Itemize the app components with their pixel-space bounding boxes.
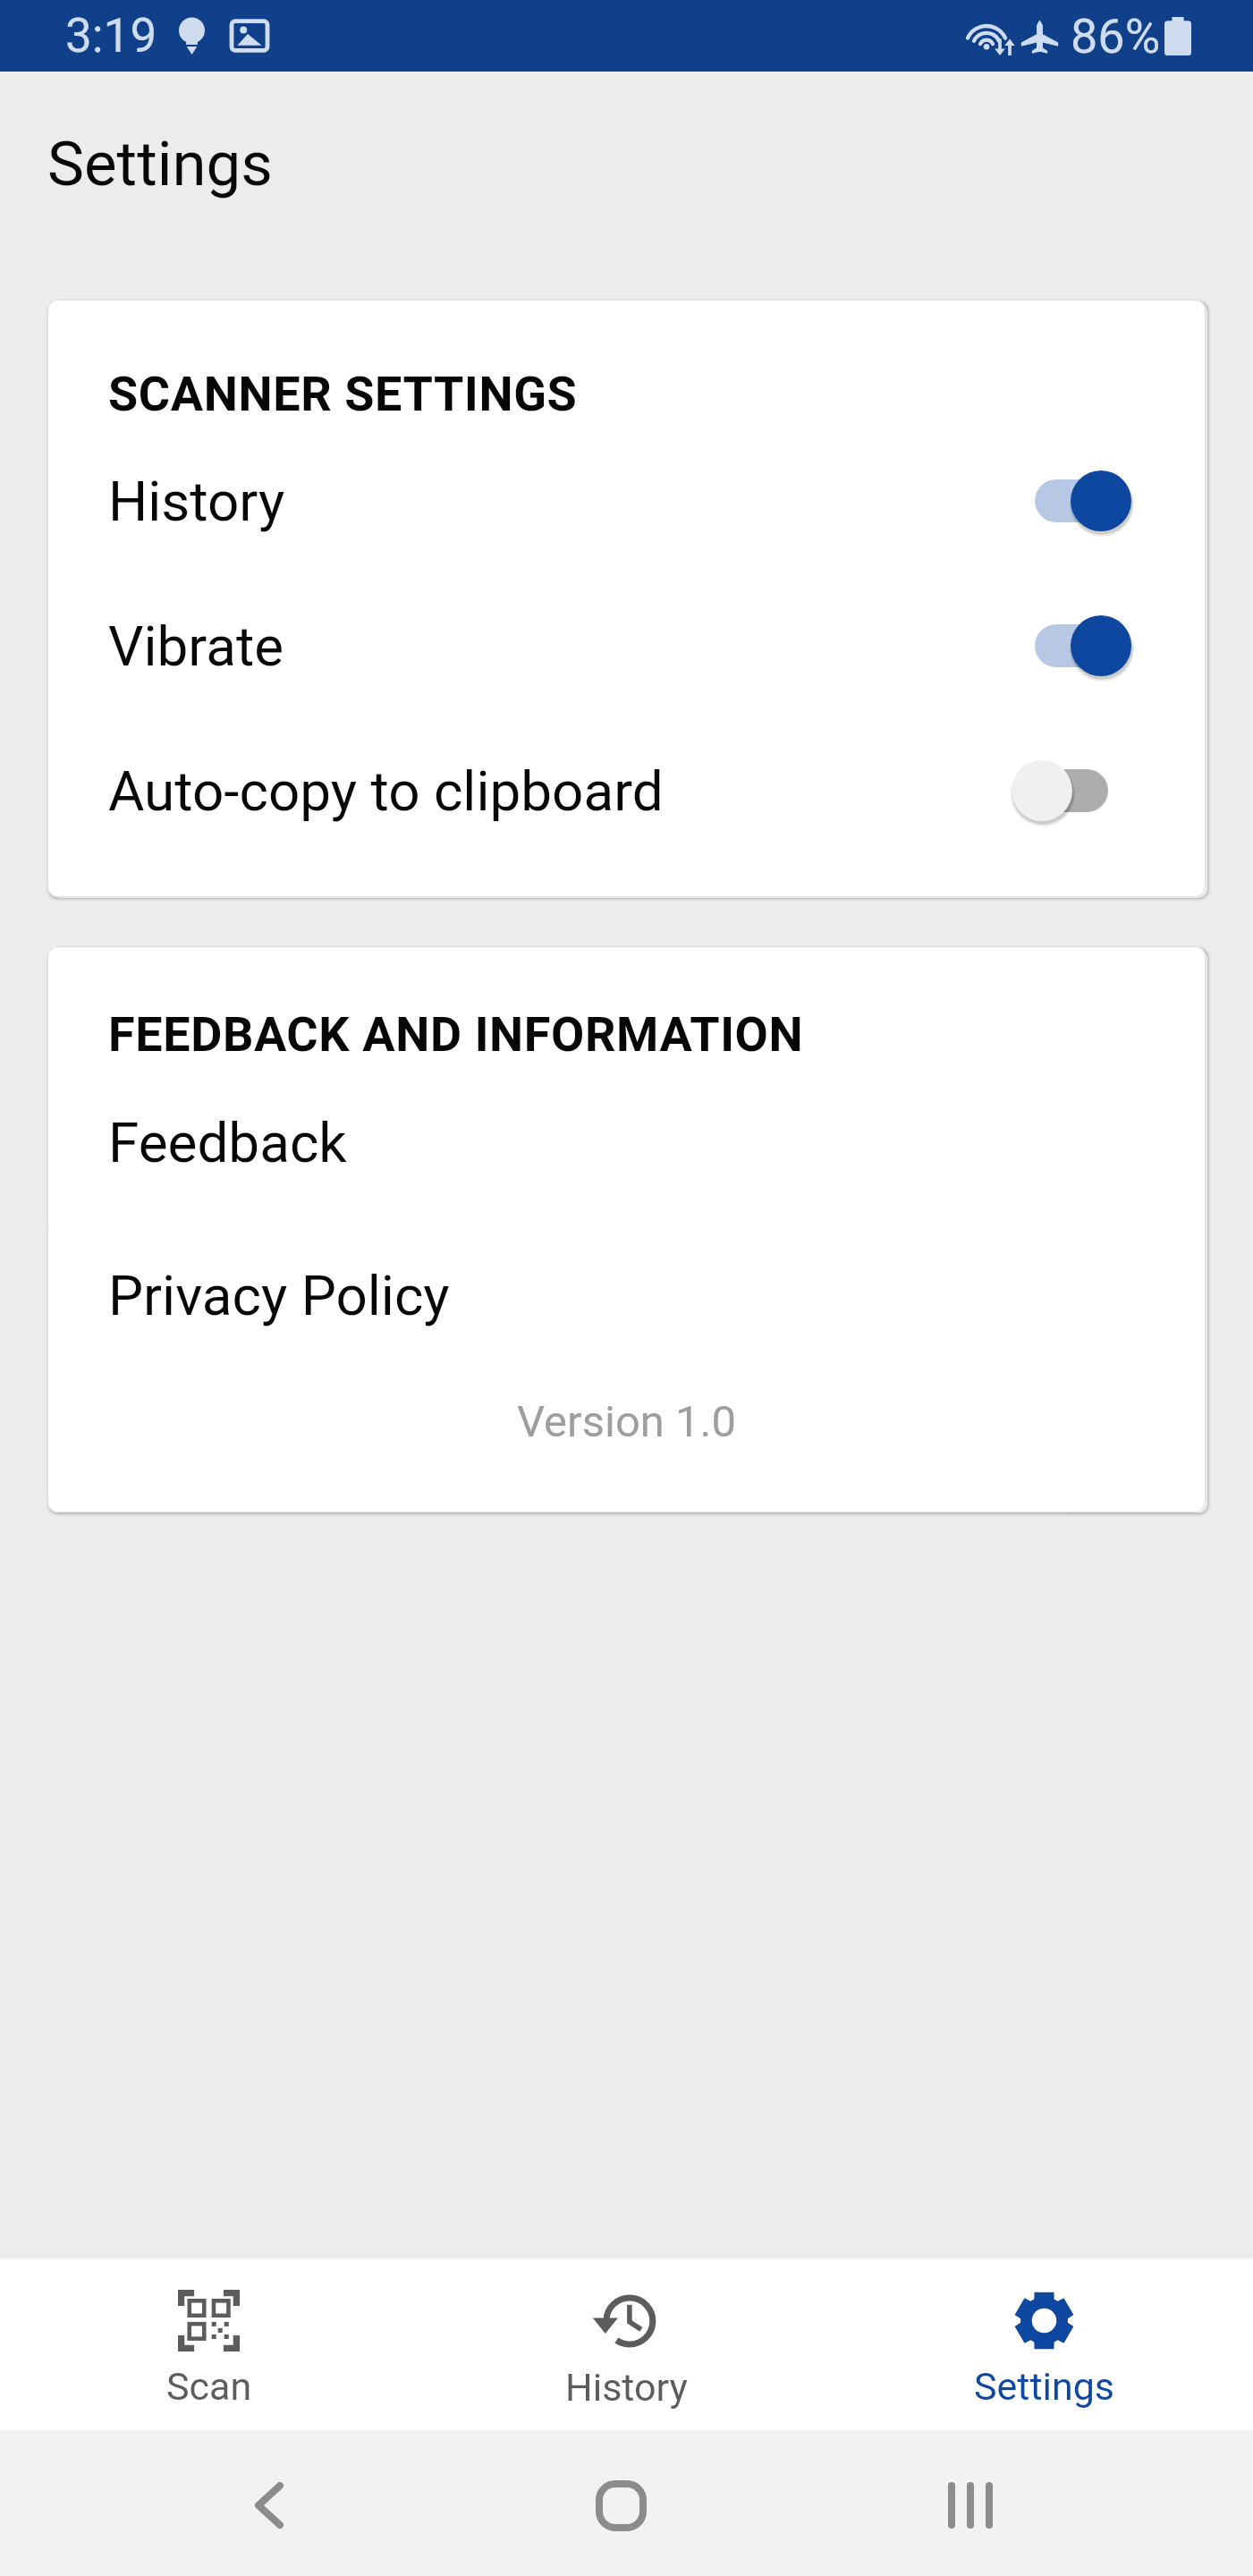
button[interactable]: Off [1012, 758, 1131, 823]
button[interactable]: Home [585, 2470, 656, 2541]
button[interactable]: Privacy Policy [108, 1219, 1145, 1372]
button[interactable]: Settings [835, 2258, 1253, 2430]
button[interactable]: On [1012, 469, 1131, 533]
staticText: Scan [166, 2364, 252, 2409]
staticText: Vibrate [108, 614, 1012, 679]
staticText: Privacy Policy [108, 1263, 450, 1328]
button[interactable]: History [108, 428, 1145, 573]
staticText: Version 1.0 [108, 1396, 1145, 1447]
staticText: SCANNER SETTINGS [108, 366, 578, 422]
button[interactable]: Scan [0, 2258, 418, 2430]
button[interactable]: Auto-copy to clipboard [108, 718, 1145, 863]
button[interactable]: Back [233, 2470, 305, 2541]
staticText: 3:19 [65, 8, 157, 64]
staticText: Settings [974, 2364, 1115, 2409]
staticText: FEEDBACK AND INFORMATION [108, 1006, 804, 1063]
staticText: Settings [47, 128, 273, 200]
staticText: Auto-copy to clipboard [108, 758, 1012, 824]
button[interactable]: History [418, 2258, 835, 2430]
button[interactable]: Vibrate [108, 573, 1145, 718]
button[interactable]: Recent apps [935, 2470, 1006, 2541]
staticText: Feedback [108, 1110, 347, 1175]
staticText: History [108, 469, 1012, 534]
staticText: 86% [1071, 8, 1161, 64]
button[interactable]: Feedback [108, 1066, 1145, 1219]
button[interactable]: On [1012, 614, 1131, 678]
staticText: History [565, 2365, 688, 2410]
